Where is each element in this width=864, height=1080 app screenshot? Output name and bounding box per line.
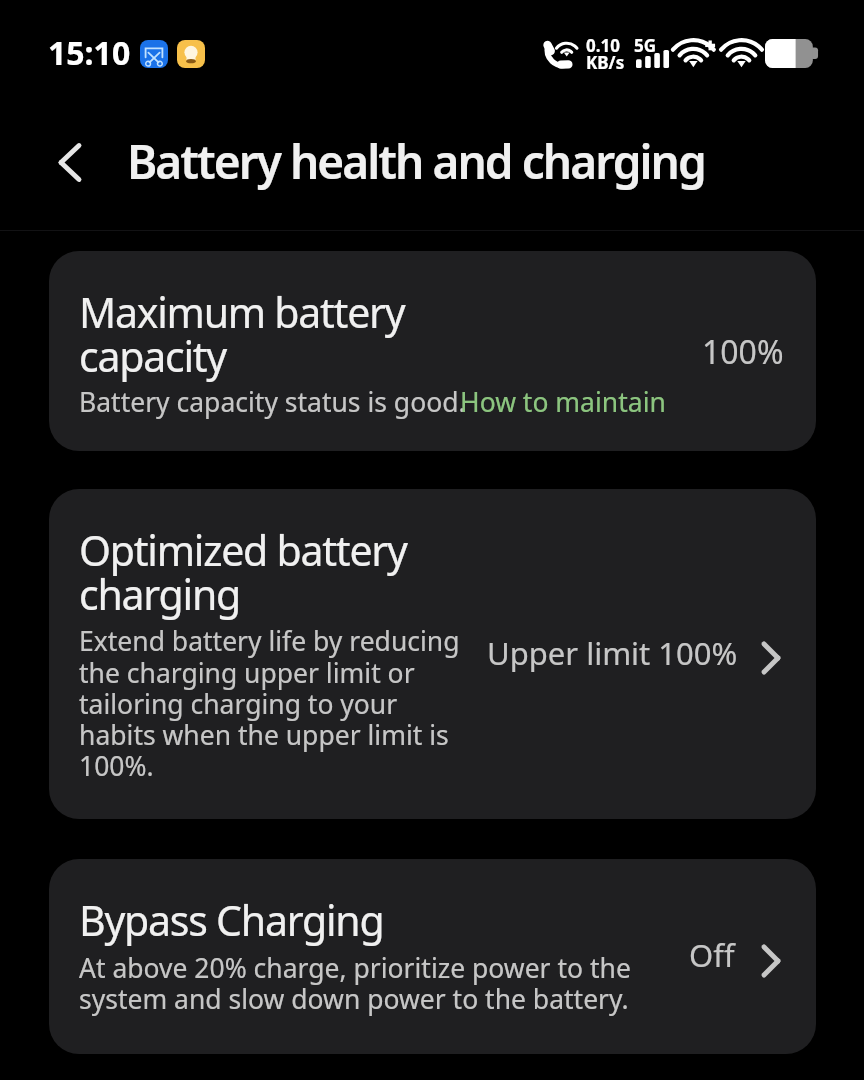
staticText: 100% bbox=[702, 330, 784, 374]
button[interactable]: Navigate back bbox=[36, 138, 96, 188]
staticText: Maximum battery capacity bbox=[79, 284, 405, 384]
other: Wi-Fi plus bbox=[679, 39, 714, 68]
other: Screenshot notification bbox=[140, 40, 168, 68]
staticText: Off bbox=[689, 934, 735, 976]
other: Wi-Fi bbox=[725, 39, 758, 68]
staticText: Upper limit 100% bbox=[487, 632, 738, 674]
staticText: Battery capacity status is good. bbox=[79, 384, 466, 420]
staticText: 0.10 KB/s bbox=[586, 34, 625, 74]
staticText: Battery health and charging bbox=[127, 130, 705, 193]
other: Battery bbox=[765, 39, 817, 68]
staticText: Extend battery life by reducing the char… bbox=[79, 623, 467, 783]
other: Tips notification bbox=[177, 40, 205, 68]
button[interactable]: Bypass Charging bbox=[49, 859, 816, 1054]
other: Wi-Fi calling bbox=[544, 40, 576, 69]
other: Mobile signal bbox=[636, 50, 669, 68]
button[interactable]: Upper limit 100%, open settings bbox=[479, 619, 816, 681]
staticText: Optimized battery charging bbox=[79, 522, 407, 622]
staticText: How to maintain bbox=[460, 384, 666, 420]
staticText: 5G bbox=[634, 34, 657, 57]
staticText: 15:10 bbox=[48, 31, 131, 75]
button[interactable]: Bypass charging, Off, open settings bbox=[681, 921, 816, 983]
button[interactable]: Maximum battery capacity bbox=[49, 251, 816, 451]
staticText: Bypass Charging bbox=[79, 892, 384, 948]
button[interactable]: Optimized battery charging bbox=[49, 489, 816, 819]
button[interactable]: How to maintain bbox=[460, 381, 673, 417]
staticText: At above 20% charge, prioritize power to… bbox=[79, 950, 631, 1017]
